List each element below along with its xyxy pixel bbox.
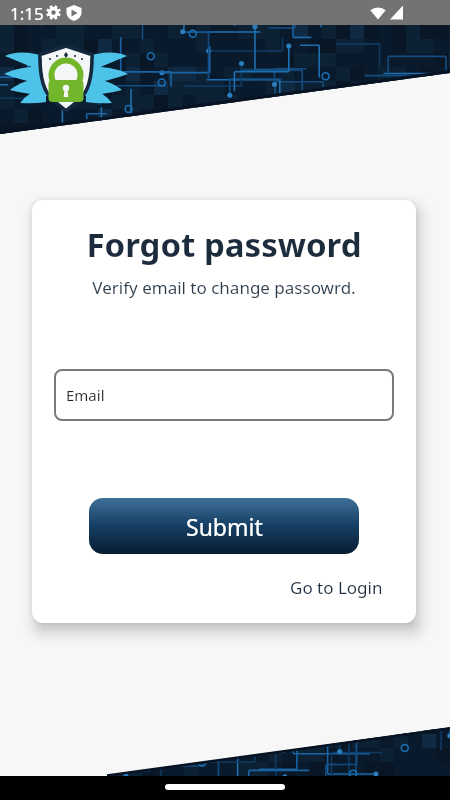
button[interactable]: Go to Login bbox=[290, 576, 416, 599]
staticText: Submit bbox=[186, 511, 263, 542]
staticText: Go to Login bbox=[290, 576, 383, 599]
staticText: Forgot password bbox=[86, 222, 362, 267]
staticText: 1:15 bbox=[10, 2, 44, 25]
button[interactable]: Email bbox=[54, 369, 394, 421]
staticText: Verify email to change passowrd. bbox=[92, 276, 356, 299]
button[interactable]: Submit bbox=[89, 498, 359, 554]
staticText: Email bbox=[66, 385, 105, 405]
